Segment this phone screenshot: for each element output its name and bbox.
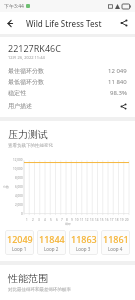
staticText: 5 — [50, 218, 52, 222]
staticText: 98.3% — [110, 89, 127, 97]
staticText: 6,000 — [15, 185, 23, 189]
staticText: 最低循环分数 — [8, 78, 44, 86]
button[interactable]: 11863 — [69, 230, 98, 255]
staticText: 对比最佳循环和最差循环的帧率 — [8, 287, 71, 293]
staticText: 11863 — [71, 233, 97, 245]
staticText: 20 — [125, 218, 129, 222]
staticText: 0 — [21, 212, 23, 216]
staticText: 10 — [75, 218, 79, 222]
staticText: 稳定性 — [8, 89, 26, 97]
staticText: 12月 26, 2022 11:44 — [8, 55, 45, 60]
staticText: 12 049 — [108, 67, 127, 75]
staticText: 12,000 — [13, 158, 23, 162]
staticText: 循环 — [65, 222, 71, 226]
staticText: 12049 — [7, 233, 33, 245]
button[interactable]: 11861 — [101, 230, 130, 255]
staticText: 查看负载下的性能变化 — [8, 143, 53, 149]
staticText: 11 — [80, 218, 84, 222]
staticText: Loop 2 — [44, 246, 59, 252]
button[interactable]: Back — [0, 12, 22, 34]
button[interactable]: Share — [113, 12, 135, 34]
staticText: 12 — [85, 218, 89, 222]
staticText: 6 — [56, 218, 58, 222]
staticText: 7 — [61, 218, 63, 222]
staticText: 下午3:44 — [4, 3, 24, 10]
staticText: 13 — [90, 218, 94, 222]
staticText: 14 — [95, 218, 99, 222]
staticText: 11861 — [103, 233, 129, 245]
staticText: 性能范围 — [8, 272, 48, 285]
staticText: 9 — [71, 218, 73, 222]
staticText: 4 — [44, 218, 46, 222]
staticText: 8 — [66, 218, 68, 222]
staticText: Wild Life Stress Test — [26, 18, 102, 29]
staticText: 压力测试 — [8, 128, 48, 141]
staticText: 19 — [120, 218, 124, 222]
button[interactable]: 12049 — [5, 230, 34, 255]
staticText: 2 — [32, 218, 34, 222]
staticText: Loop 3 — [76, 246, 91, 252]
staticText: 11844 — [39, 233, 65, 245]
staticText: 15 — [100, 218, 104, 222]
staticText: 1 — [26, 218, 28, 222]
button[interactable]: 用户描述 — [0, 98, 135, 114]
staticText: 8,000 — [15, 176, 23, 180]
staticText: 最佳循环分数 — [8, 67, 44, 75]
staticText: 22127RK46C — [8, 42, 61, 54]
staticText: 分数 — [3, 185, 9, 189]
staticText: 4,000 — [15, 194, 23, 198]
button[interactable]: 11844 — [37, 230, 66, 255]
staticText: 用户描述 — [8, 102, 32, 110]
staticText: 2,000 — [15, 203, 23, 207]
staticText: Loop 4 — [108, 246, 123, 252]
staticText: Loop 1 — [12, 246, 27, 252]
staticText: 16 — [105, 218, 109, 222]
staticText: 17 — [110, 218, 114, 222]
staticText: 10,000 — [13, 167, 23, 171]
staticText: 18 — [115, 218, 119, 222]
staticText: 11 840 — [108, 78, 127, 86]
staticText: 3 — [38, 218, 40, 222]
